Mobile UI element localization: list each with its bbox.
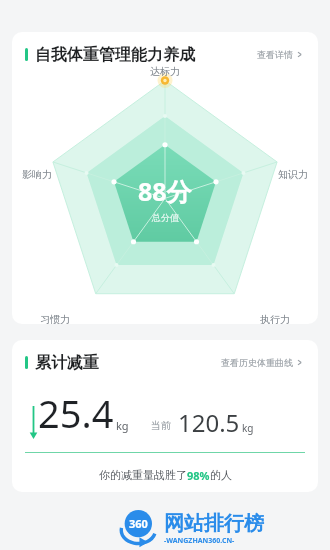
staticText: 影响力 — [22, 168, 52, 181]
staticText: 当前 — [151, 419, 171, 432]
other: Weight decreased — [28, 403, 38, 439]
staticText: 88分 — [138, 174, 192, 208]
staticText: 查看历史体重曲线 — [221, 357, 293, 368]
staticText: 网站排行榜 — [164, 511, 264, 536]
staticText: 执行力 — [260, 313, 290, 324]
staticText: 总分值 — [152, 212, 179, 223]
staticText: 你的减重量战胜了 — [99, 468, 187, 482]
staticText: 的人 — [210, 468, 232, 482]
button[interactable]: 自我体重管理能力养成 — [12, 32, 318, 324]
staticText: 自我体重管理能力养成 — [35, 45, 195, 65]
button[interactable]: 累计减重 — [12, 340, 318, 492]
staticText: 累计减重 — [35, 353, 99, 373]
staticText: kg — [242, 421, 254, 435]
staticText: 120.5 — [178, 406, 240, 439]
staticText: 知识力 — [278, 168, 308, 181]
staticText: 达标力 — [150, 65, 180, 78]
staticText: kg — [116, 418, 129, 433]
staticText: 98% — [187, 468, 210, 483]
button[interactable]: 查看详情 — [255, 44, 305, 65]
staticText: -WANGZHAN360.CN- — [164, 536, 235, 546]
staticText: 习惯力 — [40, 313, 70, 324]
staticText: 25.4 — [38, 387, 114, 439]
staticText: 360 — [129, 516, 148, 531]
staticText: 查看详情 — [257, 49, 293, 60]
button[interactable]: 查看历史体重曲线 — [219, 352, 305, 373]
